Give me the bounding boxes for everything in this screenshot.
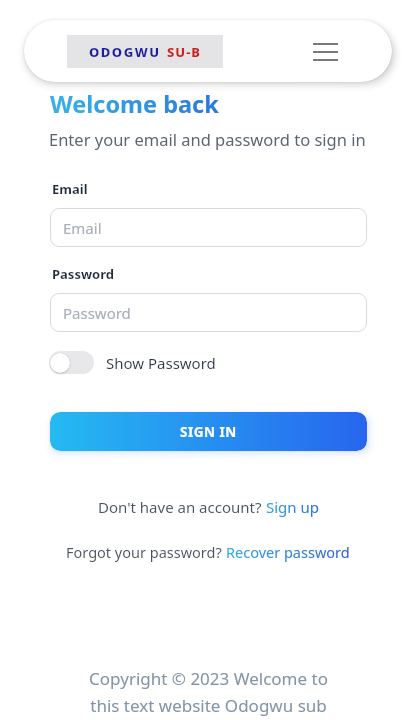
staticText: SIGN IN <box>180 423 237 441</box>
button[interactable] <box>306 37 344 67</box>
staticText: this text website Odogwu sub <box>90 694 327 717</box>
button[interactable]: Recover password <box>226 542 350 562</box>
staticText: Email <box>63 218 102 238</box>
button[interactable]: ODOGWU <box>67 35 223 68</box>
button[interactable]: SIGN IN <box>50 412 367 451</box>
staticText: Don't have an account? <box>98 497 266 517</box>
staticText: Password <box>52 265 114 283</box>
button[interactable]: Password <box>50 293 367 332</box>
staticText: Password <box>63 303 131 323</box>
staticText: Sign up <box>266 497 319 517</box>
button[interactable]: Email <box>50 208 367 247</box>
staticText: ODOGWU <box>89 43 161 61</box>
staticText: Show Password <box>106 353 216 373</box>
staticText: Enter your email and password to sign in <box>49 128 366 150</box>
staticText: Welcome back <box>50 88 219 120</box>
staticText: SU-B <box>167 43 201 61</box>
button[interactable]: Show Password <box>49 351 216 374</box>
staticText: Forgot your password? <box>66 542 226 562</box>
button[interactable]: Sign up <box>266 497 319 517</box>
staticText: Copyright © 2023 Welcome to <box>89 667 328 690</box>
staticText: Email <box>52 180 88 198</box>
staticText: Recover password <box>226 542 350 562</box>
